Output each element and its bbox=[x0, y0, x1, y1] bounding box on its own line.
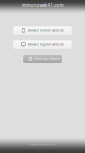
button[interactable]: Browse regular website bbox=[13, 40, 71, 48]
staticText: powered by MobileSite bbox=[29, 143, 55, 146]
staticText: immunoweb41.com bbox=[21, 2, 63, 8]
button[interactable]: Clear my choice bbox=[23, 54, 62, 63]
staticText: Clear my choice bbox=[34, 57, 60, 61]
button[interactable]: Browse mobile website bbox=[13, 26, 71, 34]
staticText: Browse mobile website bbox=[28, 28, 64, 33]
staticText: Browse regular website bbox=[28, 42, 64, 47]
